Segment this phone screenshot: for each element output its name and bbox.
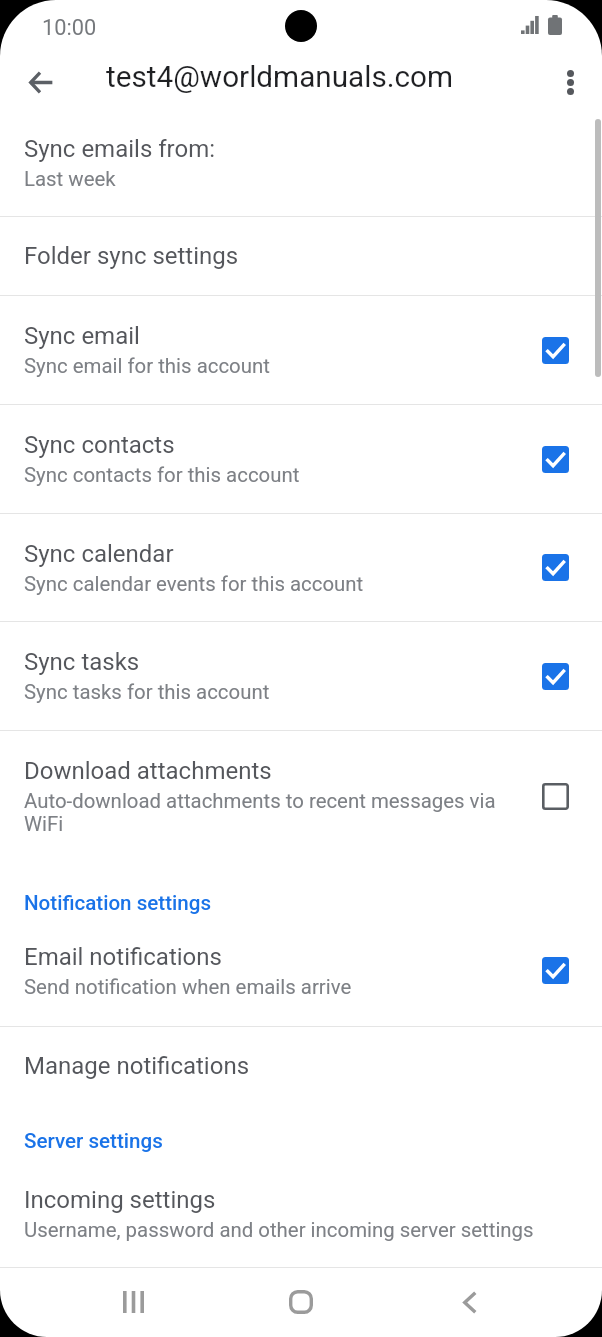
staticText: Send notification when emails arrive (24, 975, 352, 999)
button[interactable]: Incoming settings (0, 1161, 602, 1267)
button[interactable]: Back (439, 1271, 501, 1333)
staticText: Server settings (24, 1129, 163, 1153)
staticText: Sync calendar (24, 540, 174, 568)
staticText: Folder sync settings (24, 242, 239, 270)
staticText: Sync calendar events for this account (24, 572, 364, 596)
staticText: Auto-download attachments to recent mess… (24, 789, 524, 836)
button[interactable]: Navigate up (18, 59, 64, 105)
staticText: Download attachments (24, 757, 272, 785)
staticText: Sync emails from: (24, 135, 216, 163)
button[interactable]: Recent apps (102, 1271, 164, 1333)
staticText: 10:00 (42, 15, 97, 41)
button[interactable]: Sync emails from: (0, 105, 602, 216)
button[interactable]: Sync contacts (0, 405, 602, 513)
button[interactable]: Sync calendar (0, 514, 602, 621)
staticText: Sync contacts (24, 431, 175, 459)
button[interactable]: Download attachments (0, 731, 602, 861)
staticText: Sync tasks (24, 648, 140, 676)
staticText: Manage notifications (24, 1052, 250, 1080)
button[interactable]: Email notifications (0, 915, 602, 1026)
staticText: Last week (24, 167, 116, 191)
button[interactable]: More options (548, 60, 592, 104)
staticText: Sync tasks for this account (24, 680, 270, 704)
button[interactable]: Manage notifications (0, 1027, 602, 1105)
staticText: Notification settings (24, 891, 211, 915)
staticText: Incoming settings (24, 1186, 216, 1214)
staticText: Sync contacts for this account (24, 463, 300, 487)
staticText: Email notifications (24, 943, 222, 971)
button[interactable]: Folder sync settings (0, 217, 602, 295)
staticText: Sync email for this account (24, 354, 270, 378)
staticText: Sync email (24, 322, 140, 350)
button[interactable]: Sync tasks (0, 622, 602, 730)
staticText: Username, password and other incoming se… (24, 1218, 534, 1242)
staticText: test4@worldmanuals.com (106, 59, 454, 94)
button[interactable]: Home (270, 1271, 332, 1333)
button[interactable]: Sync email (0, 296, 602, 404)
